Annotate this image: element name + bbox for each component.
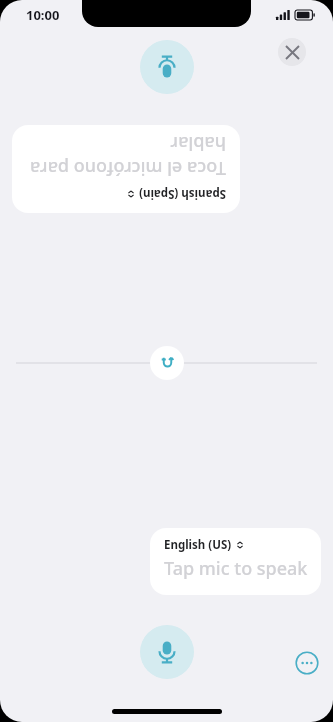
button[interactable]: Speak Spanish — [140, 40, 194, 94]
staticText: English (US) — [164, 537, 232, 553]
button[interactable]: English (US) — [150, 528, 321, 595]
button[interactable]: Speak English — [140, 625, 194, 679]
staticText: 10:00 — [26, 6, 60, 24]
button[interactable]: Swap languages — [150, 346, 184, 380]
staticText: Spanish (Spain) — [139, 186, 226, 202]
button[interactable]: Close — [278, 38, 306, 66]
staticText: Tap mic to speak — [164, 556, 308, 581]
staticText: Toca el micrófono para hablar — [26, 131, 226, 181]
button[interactable]: Spanish (Spain) — [12, 125, 240, 213]
button[interactable]: More options — [294, 650, 320, 676]
